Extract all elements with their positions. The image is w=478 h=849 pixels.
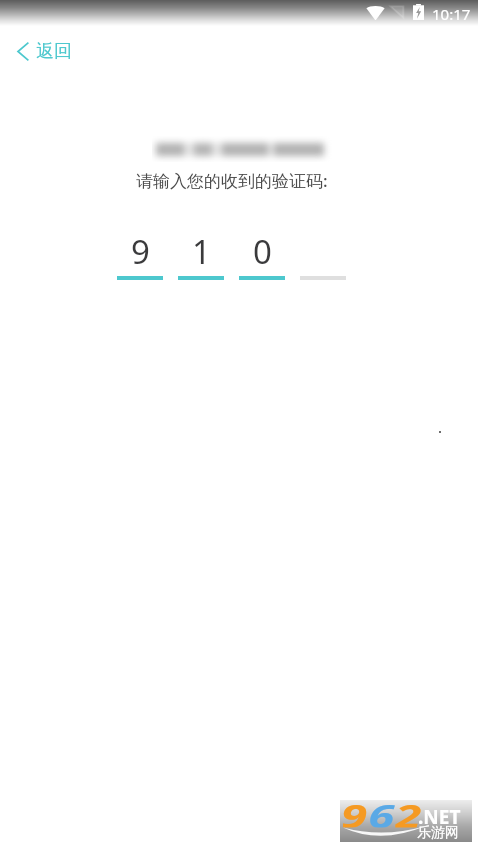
staticText: 10:17 — [432, 4, 471, 24]
staticText: 1 — [192, 229, 211, 274]
staticText: 2 — [395, 794, 422, 828]
staticText: 9 — [131, 229, 150, 274]
staticText: 9 — [341, 794, 368, 828]
button[interactable]: 0 — [239, 229, 285, 280]
button[interactable]: 返回 Back — [0, 30, 86, 72]
staticText: 6 — [368, 794, 395, 828]
button[interactable]: 9 — [117, 229, 163, 280]
staticText: 返回 — [36, 40, 72, 63]
staticText: 0 — [253, 229, 272, 274]
staticText: .NET — [418, 804, 461, 830]
staticText: 请输入您的收到的验证码: — [136, 169, 328, 192]
button[interactable] — [300, 229, 346, 280]
staticText: 乐游网 — [417, 824, 459, 842]
button[interactable]: 1 — [178, 229, 224, 280]
